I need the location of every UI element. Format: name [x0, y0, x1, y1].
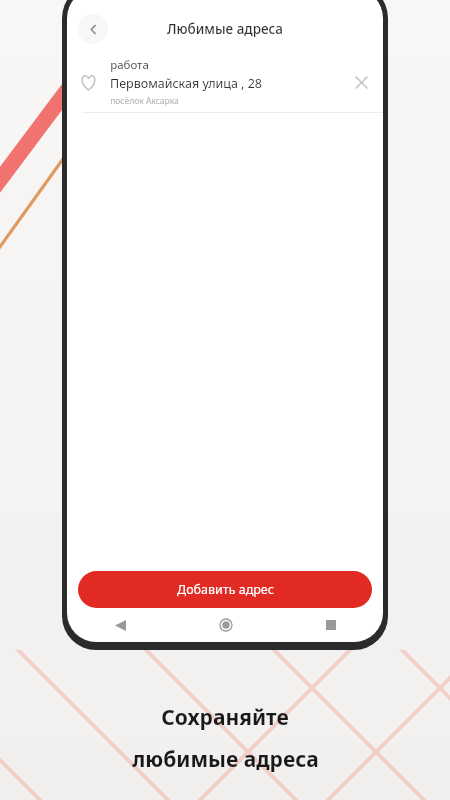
button[interactable]: Избранное: [67, 52, 383, 112]
button[interactable]: Домой: [173, 608, 278, 642]
button[interactable]: Обзор: [278, 608, 383, 642]
button[interactable]: Назад: [67, 608, 173, 642]
button[interactable]: Удалить: [339, 52, 383, 112]
staticText: посёлок Аксарка: [110, 95, 179, 107]
button[interactable]: Избранное: [67, 52, 110, 112]
staticText: Любимые адреса: [167, 20, 283, 38]
staticText: любимые адреса: [132, 745, 319, 774]
staticText: Сохраняйте: [161, 703, 289, 732]
staticText: Первомайская улица , 28: [110, 75, 262, 92]
button[interactable]: Добавить адрес: [78, 571, 372, 608]
button[interactable]: Назад: [78, 14, 108, 44]
staticText: Добавить адрес: [177, 581, 274, 598]
staticText: работа: [110, 57, 149, 73]
